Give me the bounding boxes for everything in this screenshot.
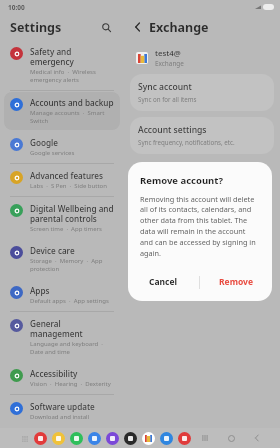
button[interactable]: Accessibility [4, 363, 120, 393]
button[interactable]: Back [130, 19, 146, 35]
staticText: Medical info · Wireless emergency alerts [30, 68, 114, 84]
button[interactable]: App [70, 432, 83, 445]
button[interactable]: Advanced features [4, 165, 120, 195]
button[interactable]: Account settings [130, 117, 274, 154]
staticText: Default apps · App settings [30, 297, 109, 305]
button[interactable]: Back [250, 431, 264, 445]
staticText: Accounts and backup [30, 97, 114, 108]
staticText: Sync on for all items [138, 95, 197, 103]
button[interactable]: Remove account [153, 162, 251, 183]
button[interactable]: Device care [4, 240, 120, 278]
button[interactable]: All apps [20, 434, 29, 443]
staticText: Remove [219, 276, 254, 288]
button[interactable]: App [52, 432, 65, 445]
button[interactable]: Safety and emergency [4, 41, 120, 89]
staticText: Google [30, 137, 58, 148]
button[interactable]: Gmail [142, 432, 155, 445]
staticText: Storage · Memory · App protection [30, 257, 114, 273]
staticText: Accessibility [30, 368, 78, 379]
button[interactable]: General management [4, 313, 120, 361]
staticText: Download and install [30, 413, 90, 421]
staticText: Remove account? [140, 174, 223, 187]
staticText: Labs · S Pen · Side button [30, 182, 107, 190]
staticText: Exchange [155, 59, 184, 68]
staticText: Manage accounts · Smart Switch [30, 109, 114, 125]
staticText: 10:00 [8, 3, 25, 12]
button[interactable]: Digital Wellbeing and parental controls [4, 198, 120, 238]
button[interactable]: Software update [4, 396, 120, 426]
staticText: Safety and emergency [30, 46, 114, 67]
staticText: Apps [30, 285, 50, 296]
button[interactable]: App [178, 432, 191, 445]
staticText: Language and keyboard · Date and time [30, 340, 114, 356]
button[interactable]: App [160, 432, 173, 445]
staticText: Software update [30, 401, 95, 412]
staticText: Account settings [138, 124, 207, 136]
button[interactable]: Accounts and backup [4, 92, 120, 130]
staticText: Device care [30, 245, 75, 256]
button[interactable]: App [106, 432, 119, 445]
staticText: Exchange [149, 19, 209, 36]
button[interactable]: Remove [200, 269, 272, 295]
staticText: Sync frequency, notifications, etc. [138, 138, 235, 146]
button[interactable]: App [34, 432, 47, 445]
button[interactable]: test4@ [130, 46, 274, 74]
staticText: Advanced features [30, 170, 104, 181]
staticText: Google services [30, 149, 75, 157]
staticText: Vision · Hearing · Dexterity [30, 380, 111, 388]
staticText: General management [30, 318, 114, 339]
button[interactable]: Sync account [130, 74, 274, 111]
button[interactable]: Apps [4, 280, 120, 310]
staticText: Removing this account will delete all of… [140, 194, 260, 258]
button[interactable]: Home [224, 431, 238, 445]
staticText: Digital Wellbeing and parental controls [30, 203, 114, 224]
staticText: Screen time · App timers [30, 225, 102, 233]
button[interactable]: Search [98, 19, 114, 35]
button[interactable]: App [124, 432, 137, 445]
button[interactable]: Cancel [128, 269, 199, 295]
staticText: Cancel [149, 276, 178, 288]
staticText: test4@ [155, 48, 181, 59]
staticText: Settings [10, 19, 62, 36]
button[interactable]: Google [4, 132, 120, 162]
staticText: Sync account [138, 81, 192, 93]
button[interactable]: App [88, 432, 101, 445]
button[interactable]: Recents [198, 431, 212, 445]
